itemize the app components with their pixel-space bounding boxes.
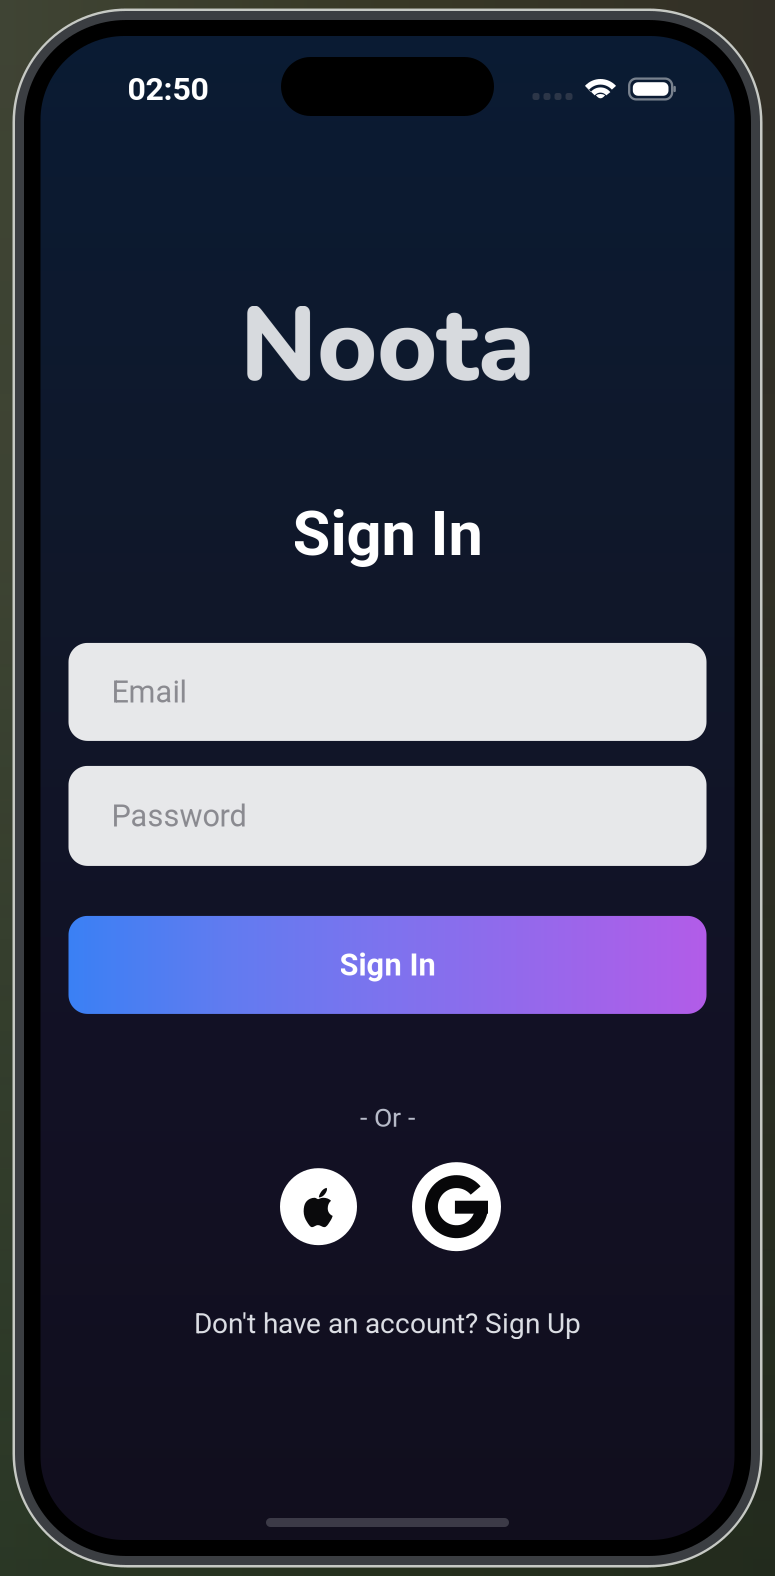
staticText: Email — [111, 674, 186, 710]
staticText: Password — [111, 798, 246, 834]
button[interactable]: Continue with Apple — [274, 1162, 363, 1251]
button[interactable]: Don't have an account? Sign Up — [194, 1307, 581, 1340]
button[interactable]: Sign In — [68, 916, 706, 1014]
button[interactable]: Continue with Google — [412, 1162, 501, 1251]
staticText: Noota — [240, 276, 535, 416]
staticText: - Or - — [360, 1102, 415, 1133]
staticText: Sign In — [339, 947, 435, 983]
staticText: 02:50 — [127, 70, 208, 108]
staticText: Sign In — [292, 498, 482, 570]
staticText: Don't have an account? Sign Up — [194, 1307, 581, 1340]
